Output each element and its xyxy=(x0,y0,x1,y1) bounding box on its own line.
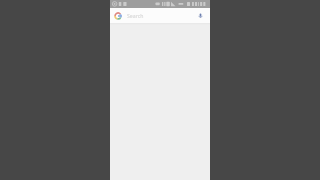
button[interactable]: Search xyxy=(110,8,210,23)
button[interactable]: Voice search xyxy=(197,12,204,19)
staticText: Search xyxy=(127,12,144,19)
